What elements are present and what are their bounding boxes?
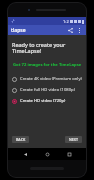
- button[interactable]: NEXT: [65, 136, 82, 143]
- staticText: tlapse: [11, 27, 26, 34]
- button[interactable]: Create full HD video (1080p): [12, 86, 82, 94]
- staticText: 1:2: [63, 19, 69, 24]
- button[interactable]: Create 4K video (Premium only): [12, 75, 82, 83]
- staticText: Ready to create your TimeLapse!: [12, 41, 66, 55]
- staticText: NEXT: [69, 137, 79, 142]
- button[interactable]: BACK: [12, 136, 29, 143]
- staticText: Create full HD video (1080p): [20, 87, 75, 93]
- button[interactable]: Share: [66, 26, 75, 35]
- staticText: BACK: [16, 137, 26, 142]
- button[interactable]: Create HD video (720p): [12, 97, 82, 105]
- staticText: Got 72 images for the TimeLapse: [13, 62, 82, 68]
- button[interactable]: Recent apps: [64, 149, 74, 159]
- staticText: Create HD video (720p): [20, 98, 66, 104]
- button[interactable]: Home: [42, 149, 52, 159]
- button[interactable]: More options: [75, 26, 84, 35]
- button[interactable]: Back: [20, 149, 30, 159]
- staticText: Create 4K video (Premium only): [20, 76, 82, 82]
